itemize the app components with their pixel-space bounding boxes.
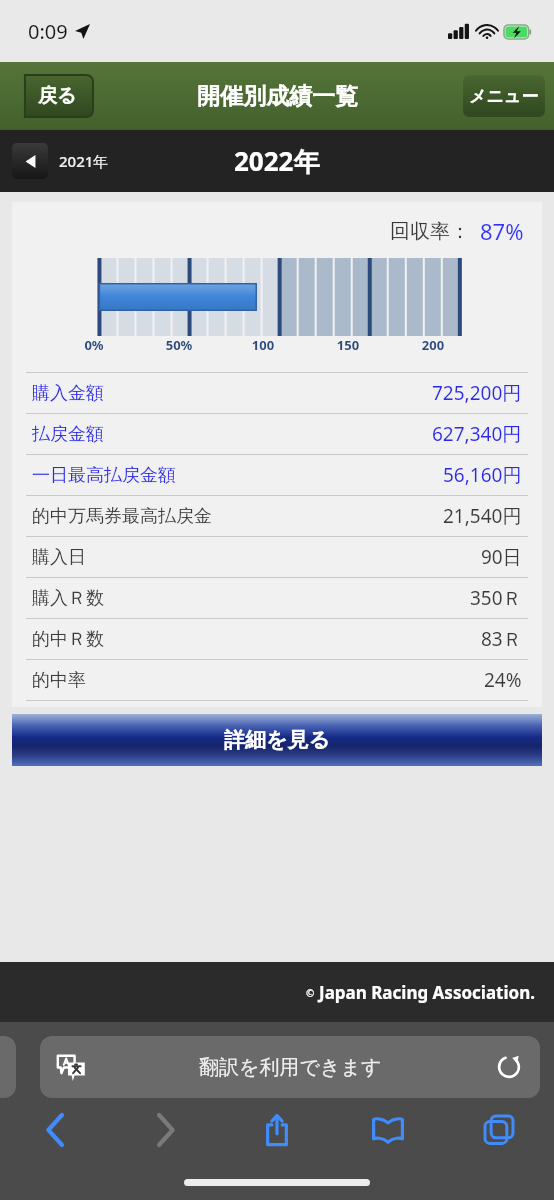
staticText: 2021年 [59, 151, 109, 171]
button[interactable]: タブ [443, 1104, 554, 1156]
staticText: 的中万馬券最高払戻金 [32, 505, 212, 528]
staticText: 90日 [481, 544, 522, 570]
staticText: © [306, 986, 315, 1000]
staticText: 56,160円 [443, 462, 522, 488]
staticText: 購入日 [32, 546, 86, 569]
button[interactable]: 購入Ｒ数 [12, 578, 542, 618]
staticText: 0% [78, 336, 110, 354]
button[interactable]: ブックマーク [332, 1104, 443, 1156]
staticText: 戻る [38, 84, 77, 108]
staticText: 2022年 [234, 143, 320, 179]
button[interactable]: 購入日 [12, 537, 542, 577]
staticText: 詳細を見る [224, 727, 330, 753]
staticText: 87% [480, 216, 524, 246]
button[interactable]: 再読み込み [496, 1054, 522, 1080]
staticText: 150% [332, 336, 364, 358]
button[interactable]: 前のタブ [0, 1036, 16, 1098]
button[interactable]: 翻訳を利用できます [40, 1036, 540, 1098]
button[interactable]: 2021年へ [12, 143, 109, 179]
staticText: 24% [484, 667, 522, 693]
staticText: 50% [163, 336, 195, 354]
button[interactable]: 的中Ｒ数 [12, 619, 542, 659]
staticText: 21,540円 [443, 503, 522, 529]
button[interactable]: メニュー [463, 75, 545, 117]
button[interactable]: 詳細を見る [12, 714, 542, 766]
staticText: 627,340円 [432, 421, 522, 447]
staticText: 100% [247, 336, 279, 358]
staticText: 的中率 [32, 669, 86, 692]
staticText: 購入Ｒ数 [32, 587, 104, 610]
button[interactable]: 払戻金額 [12, 414, 542, 454]
staticText: 一日最高払戻金額 [32, 464, 176, 487]
button[interactable]: 戻る [0, 1104, 110, 1156]
staticText: 的中Ｒ数 [32, 628, 104, 651]
button[interactable]: 的中万馬券最高払戻金 [12, 496, 542, 536]
staticText: 翻訳を利用できます [199, 1055, 382, 1080]
staticText: 83Ｒ [481, 626, 522, 652]
button[interactable]: 共有 [221, 1104, 332, 1156]
button[interactable]: 進む [110, 1104, 221, 1156]
button[interactable]: 的中率 [12, 660, 542, 700]
staticText: Japan Racing Association. [319, 981, 536, 1004]
staticText: 購入金額 [32, 382, 104, 405]
staticText: メニュー [469, 86, 539, 107]
staticText: 0:09 [28, 18, 68, 45]
button[interactable]: 一日最高払戻金額 [12, 455, 542, 495]
staticText: 回収率： [390, 219, 470, 244]
staticText: 開催別成績一覧 [197, 82, 358, 111]
staticText: 払戻金額 [32, 423, 104, 446]
staticText: 725,200円 [432, 380, 522, 406]
staticText: 200% [417, 336, 449, 358]
button[interactable]: 戻る [11, 75, 93, 117]
staticText: 350Ｒ [470, 585, 522, 611]
button[interactable]: 購入金額 [12, 373, 542, 413]
